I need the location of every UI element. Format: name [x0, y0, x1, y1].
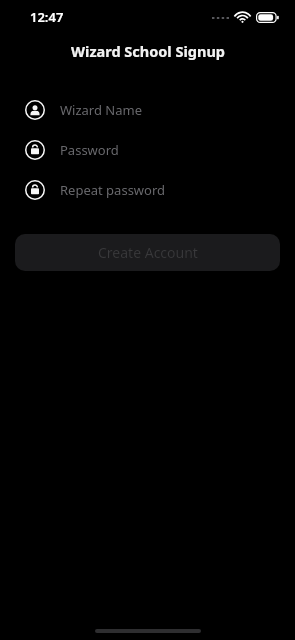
button[interactable]: Repeat password [0, 179, 295, 201]
staticText: Create Account [98, 243, 198, 262]
staticText: Wizard Name [60, 101, 142, 119]
staticText: Repeat password [60, 181, 166, 199]
staticText: Wizard School Signup [71, 41, 225, 61]
staticText: Password [60, 141, 119, 159]
button[interactable]: Password [0, 139, 295, 161]
button[interactable]: Wizard Name [0, 99, 295, 121]
button[interactable]: Create Account [15, 234, 280, 271]
staticText: 12:47 [30, 8, 64, 26]
